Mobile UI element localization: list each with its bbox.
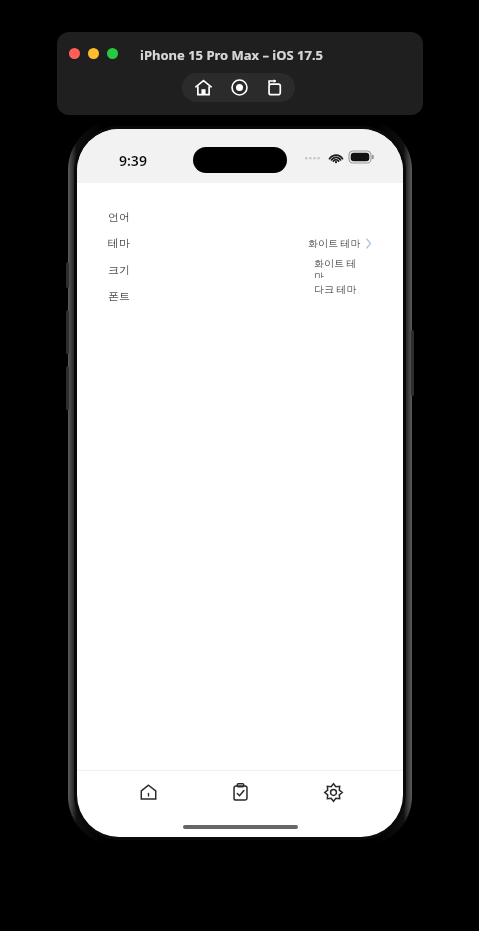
button[interactable]: Home	[126, 770, 170, 814]
button[interactable]: Tasks	[218, 770, 262, 814]
button[interactable]: Rotate	[259, 73, 289, 102]
staticText: 크기	[108, 263, 130, 277]
button[interactable]: 다크 테마	[306, 278, 374, 300]
button[interactable]: Home	[188, 73, 218, 102]
button[interactable]: Record	[224, 73, 254, 102]
button[interactable]: 폰트	[92, 285, 387, 307]
button[interactable]: Maximize	[107, 48, 118, 59]
button[interactable]: 언어	[92, 206, 387, 228]
button[interactable]: Minimize	[88, 48, 99, 59]
staticText: 다크 테마	[314, 282, 366, 296]
button[interactable]: 크기	[92, 259, 387, 281]
staticText: 화이트 테마	[314, 256, 366, 278]
button[interactable]: Settings	[311, 770, 355, 814]
staticText: 폰트	[108, 289, 130, 303]
staticText: iPhone 15 Pro Max – iOS 17.5	[140, 46, 324, 64]
button[interactable]: 테마	[92, 232, 387, 254]
staticText: 9:39	[119, 151, 147, 170]
staticText: 언어	[108, 210, 130, 224]
button[interactable]: 화이트 테마	[306, 256, 374, 278]
staticText: 화이트 테마	[308, 236, 361, 250]
staticText: 테마	[108, 236, 130, 250]
button[interactable]: Close	[69, 48, 80, 59]
